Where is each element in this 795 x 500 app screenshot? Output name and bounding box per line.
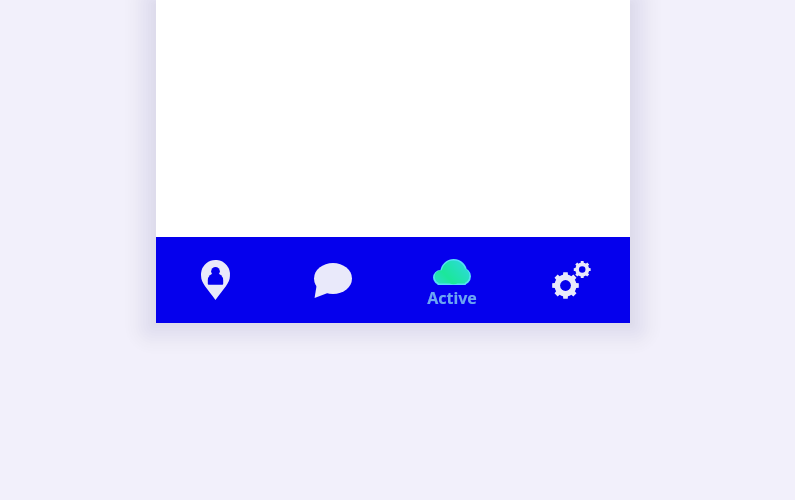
button[interactable]: Settings xyxy=(511,237,630,323)
staticText: Active xyxy=(427,287,477,309)
button[interactable]: Location xyxy=(156,237,274,323)
button[interactable]: Messages xyxy=(274,237,392,323)
button[interactable]: Active xyxy=(392,237,511,323)
